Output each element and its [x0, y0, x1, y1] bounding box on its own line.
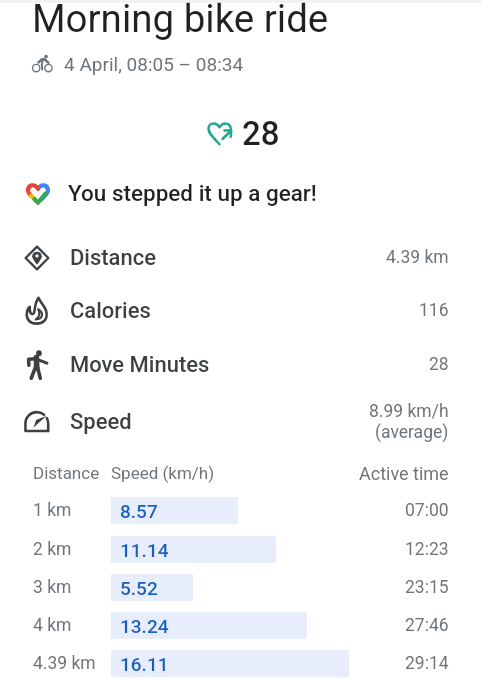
staticText: 07:00 — [405, 500, 449, 521]
staticText: 16.11 — [120, 653, 169, 675]
staticText: 116 — [419, 300, 449, 321]
staticText: Distance — [33, 463, 100, 483]
staticText: 29:14 — [405, 653, 449, 674]
button[interactable]: Speed — [0, 392, 481, 452]
staticText: 23:15 — [405, 577, 449, 598]
staticText: Move Minutes — [70, 352, 210, 378]
staticText: 8.57 — [120, 500, 158, 522]
staticText: 27:46 — [405, 615, 449, 636]
staticText: Active time — [359, 463, 449, 484]
staticText: 4 km — [33, 615, 72, 636]
staticText: 12:23 — [405, 539, 449, 560]
staticText: 28 — [242, 114, 280, 153]
button[interactable]: 28 — [207, 114, 280, 153]
staticText: 4.39 km — [386, 247, 449, 268]
staticText: 4 April, 08:05 – 08:34 — [64, 53, 244, 75]
staticText: Calories — [70, 298, 151, 324]
staticText: Distance — [70, 245, 156, 271]
staticText: You stepped it up a gear! — [68, 180, 317, 206]
staticText: Speed (km/h) — [111, 463, 215, 483]
staticText: 5.52 — [120, 577, 158, 599]
button[interactable]: Calories — [0, 284, 481, 337]
staticText: 2 km — [33, 539, 72, 560]
staticText: Speed — [70, 409, 132, 435]
button[interactable]: Distance — [0, 231, 481, 284]
staticText: 3 km — [33, 577, 72, 598]
staticText: 1 km — [33, 500, 72, 521]
staticText: 28 — [429, 354, 449, 375]
staticText: 13.24 — [120, 615, 169, 637]
staticText: 11.14 — [120, 539, 169, 561]
staticText: 8.99 km/h — [369, 401, 449, 422]
staticText: (average) — [375, 422, 449, 443]
button[interactable]: Move Minutes — [0, 338, 481, 391]
staticText: Morning bike ride — [32, 0, 329, 41]
staticText: 4.39 km — [33, 653, 96, 674]
